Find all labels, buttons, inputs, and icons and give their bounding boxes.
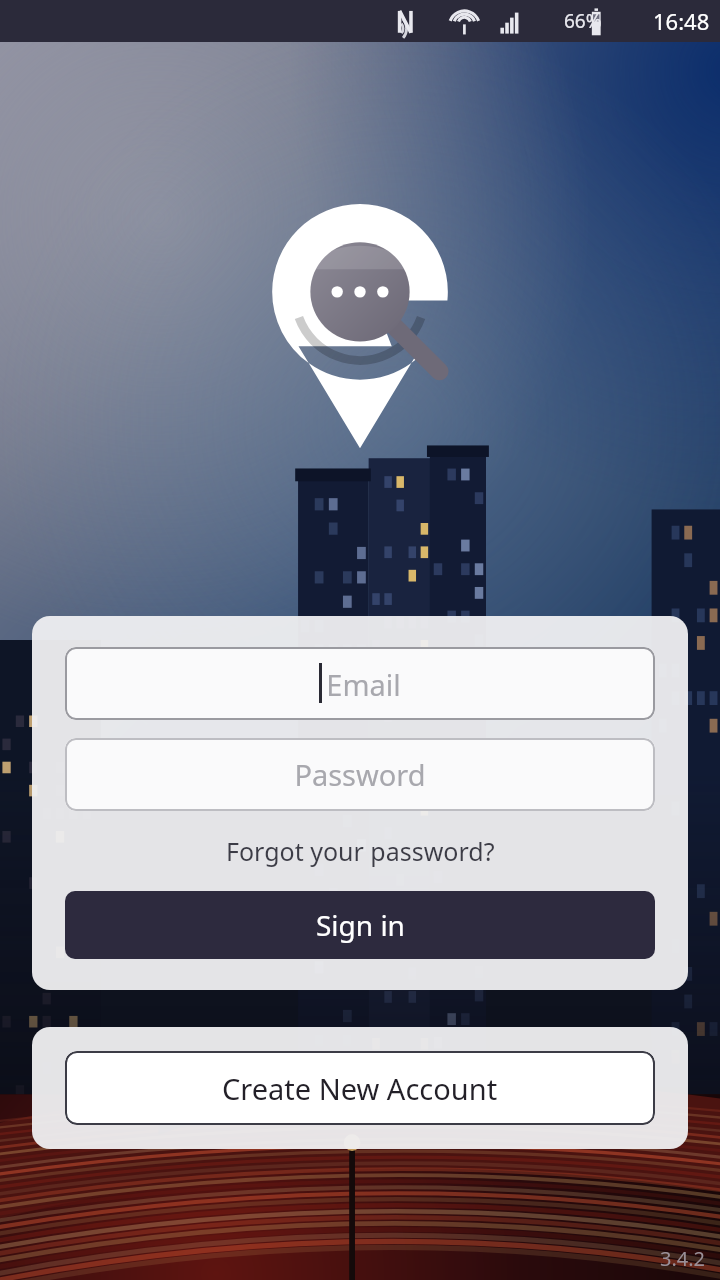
- staticText: 66%: [564, 8, 602, 34]
- staticText: Email: [326, 665, 401, 704]
- button[interactable]: Forgot your password?: [65, 825, 655, 877]
- staticText: Sign in: [316, 906, 405, 944]
- staticText: Create New Account: [222, 1069, 498, 1108]
- staticText: Forgot your password?: [226, 834, 495, 868]
- staticText: Password: [294, 755, 426, 794]
- button[interactable]: Sign in: [65, 891, 655, 959]
- button[interactable]: Email: [65, 647, 655, 720]
- staticText: 3.4.2: [660, 1245, 706, 1272]
- staticText: 16:48: [653, 6, 710, 36]
- button[interactable]: Create New Account: [65, 1051, 655, 1125]
- button[interactable]: Password: [65, 738, 655, 811]
